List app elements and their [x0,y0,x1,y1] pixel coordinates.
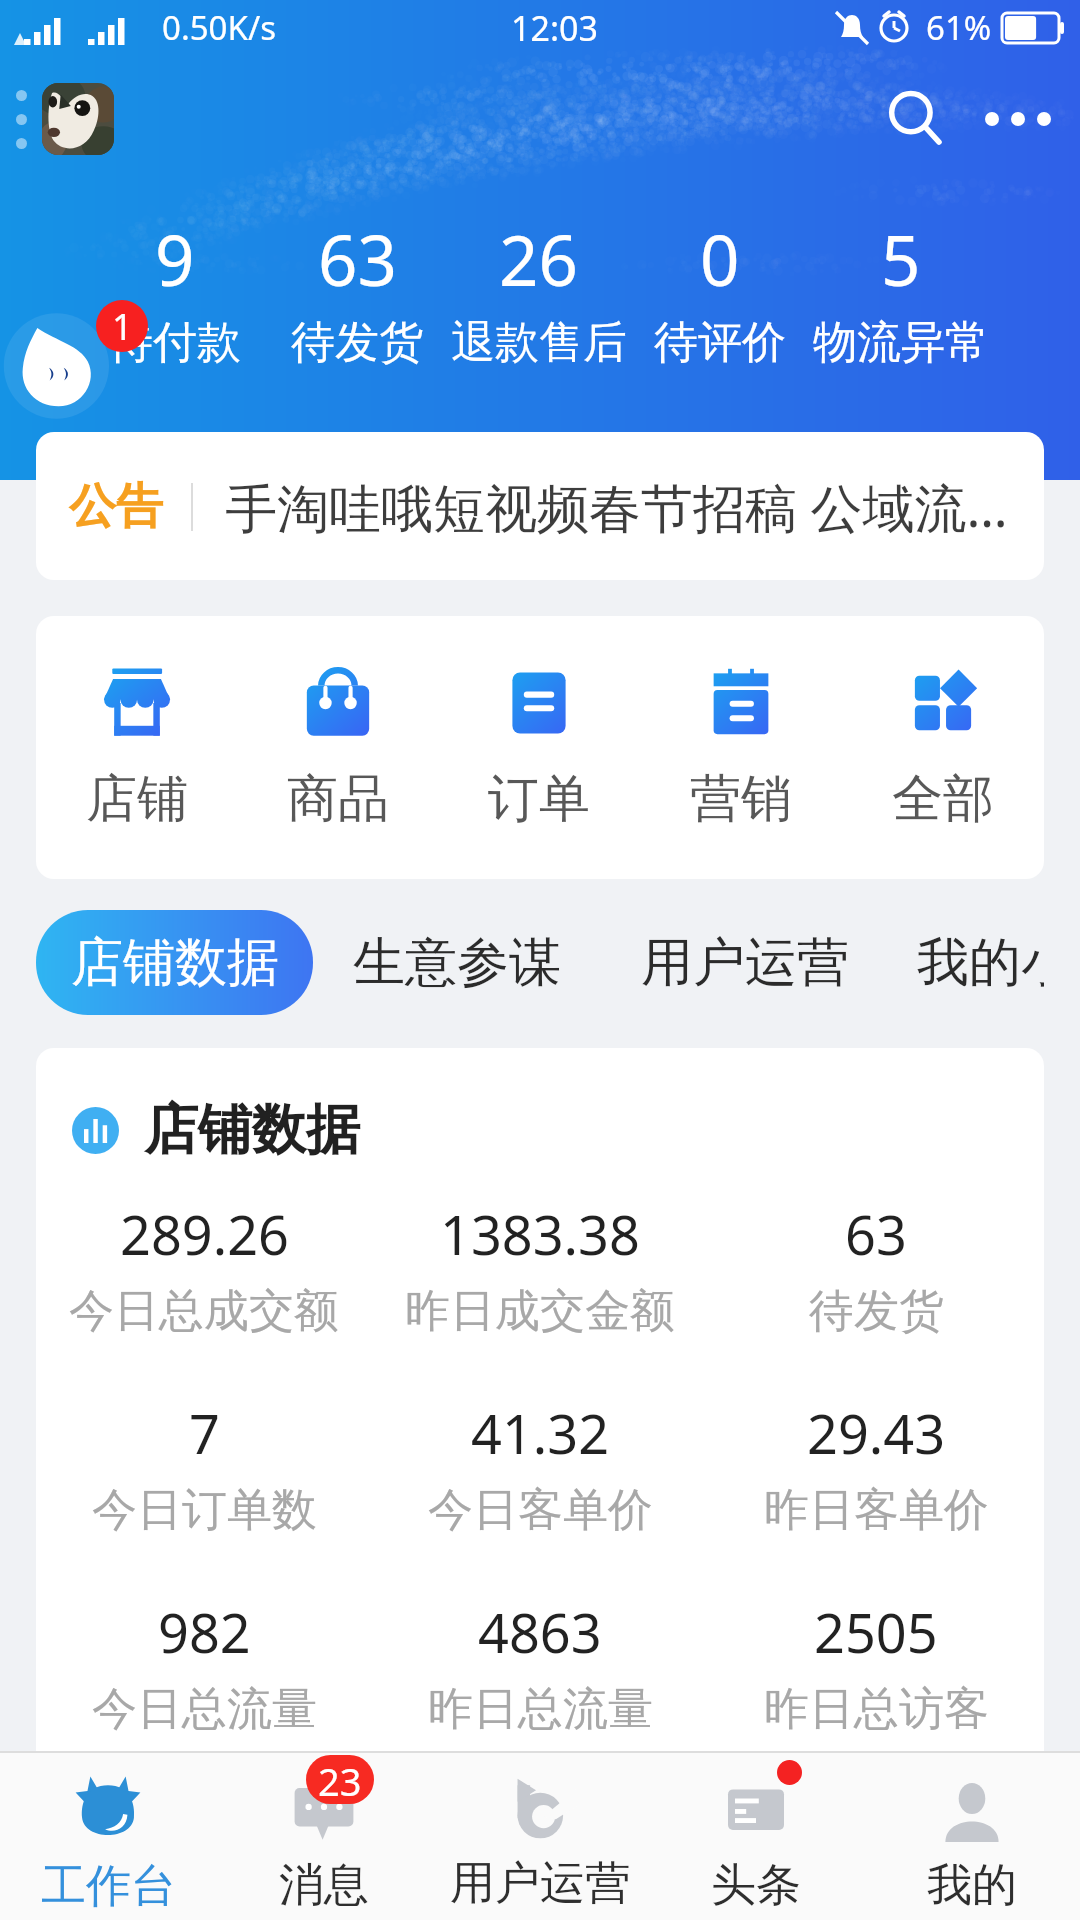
staticText: 昨日客单价 [764,1482,989,1539]
button[interactable]: 店铺数据 [72,1096,360,1164]
staticText: 订单 [488,767,590,831]
staticText: 今日总成交额 [69,1283,339,1340]
staticText: 5 [881,212,921,306]
button[interactable]: Search [868,71,964,167]
button[interactable]: 9 [84,212,266,370]
staticText: 0 [700,212,740,306]
button[interactable]: 生意参谋 [353,918,561,1008]
staticText: 63 [845,1197,907,1271]
staticText: 0.50K/s [162,5,276,50]
button[interactable]: 工作台 [0,1753,216,1920]
button[interactable]: 我的小店 [917,918,1044,1008]
staticText: 1383.38 [440,1197,640,1271]
staticText: 12:03 [511,5,598,51]
button[interactable]: 营销 [640,616,842,879]
staticText: 手淘哇哦短视频春节招稿 公域流… [225,471,1008,542]
button[interactable]: 店铺 [36,616,237,879]
button[interactable]: Profile avatar [42,83,114,155]
staticText: 用户运营 [450,1855,630,1912]
button[interactable]: 982 [36,1595,372,1738]
staticText: 我的小店 [917,930,1044,996]
staticText: 今日总流量 [92,1681,317,1738]
staticText: 待发货 [809,1283,944,1340]
staticText: 4863 [478,1595,602,1669]
button[interactable]: 41.32 [372,1396,708,1539]
button[interactable]: 用户运营 [641,918,849,1008]
staticText: 41.32 [471,1396,610,1470]
button[interactable]: Chat assistant [6,310,118,422]
button[interactable]: 5 [810,212,991,370]
button[interactable]: 63 [266,212,448,370]
staticText: 29.43 [807,1396,946,1470]
button[interactable]: 订单 [438,616,640,879]
staticText: 昨日总流量 [428,1681,653,1738]
staticText: 61% [926,5,992,50]
staticText: 9 [155,212,195,306]
staticText: 消息 [279,1857,369,1914]
staticText: 店铺 [86,767,188,831]
staticText: 63 [318,212,397,306]
button[interactable]: 29.43 [708,1396,1044,1539]
staticText: 商品 [287,767,389,831]
button[interactable]: 0 [629,212,810,370]
button[interactable]: 7 [36,1396,372,1539]
staticText: 物流异常 [813,315,989,370]
staticText: 全部 [892,767,994,831]
staticText: 7 [189,1396,220,1470]
button[interactable]: 4863 [372,1595,708,1738]
button[interactable]: 全部 [842,616,1044,879]
staticText: 待发货 [291,315,423,370]
staticText: 工作台 [41,1858,176,1915]
button[interactable]: 23 [216,1753,432,1920]
button[interactable]: 289.26 [36,1197,372,1340]
staticText: 待付款 [109,315,241,370]
staticText: 1 [112,302,133,351]
button[interactable]: 我的 [864,1753,1080,1920]
staticText: 用户运营 [641,930,849,996]
staticText: 26 [499,212,578,306]
button[interactable]: 2505 [708,1595,1044,1738]
button[interactable]: 店铺数据 [36,910,313,1015]
staticText: 待评价 [654,315,786,370]
staticText: 今日客单价 [428,1482,653,1539]
button[interactable]: 63 [708,1197,1044,1340]
button[interactable]: 商品 [237,616,438,879]
staticText: 店铺数据 [71,930,279,996]
button[interactable]: More options [970,71,1066,167]
staticText: 2505 [814,1595,938,1669]
staticText: 营销 [690,767,792,831]
button[interactable]: 用户运营 [432,1753,648,1920]
button[interactable]: 头条 [648,1753,864,1920]
button[interactable]: 公告 [36,432,1044,580]
button[interactable]: 26 [448,212,629,370]
staticText: 头条 [711,1857,801,1914]
staticText: 982 [158,1595,251,1669]
staticText: 289.26 [120,1197,289,1271]
staticText: 退款售后 [451,315,627,370]
staticText: 公告 [69,477,163,536]
staticText: 店铺数据 [144,1096,360,1164]
staticText: 今日订单数 [92,1482,317,1539]
staticText: 我的 [927,1857,1017,1914]
staticText: 昨日成交金额 [405,1283,675,1340]
staticText: 23 [318,1755,362,1804]
button[interactable]: 1383.38 [372,1197,708,1340]
staticText: 生意参谋 [353,930,561,996]
staticText: 昨日总访客 [764,1681,989,1738]
